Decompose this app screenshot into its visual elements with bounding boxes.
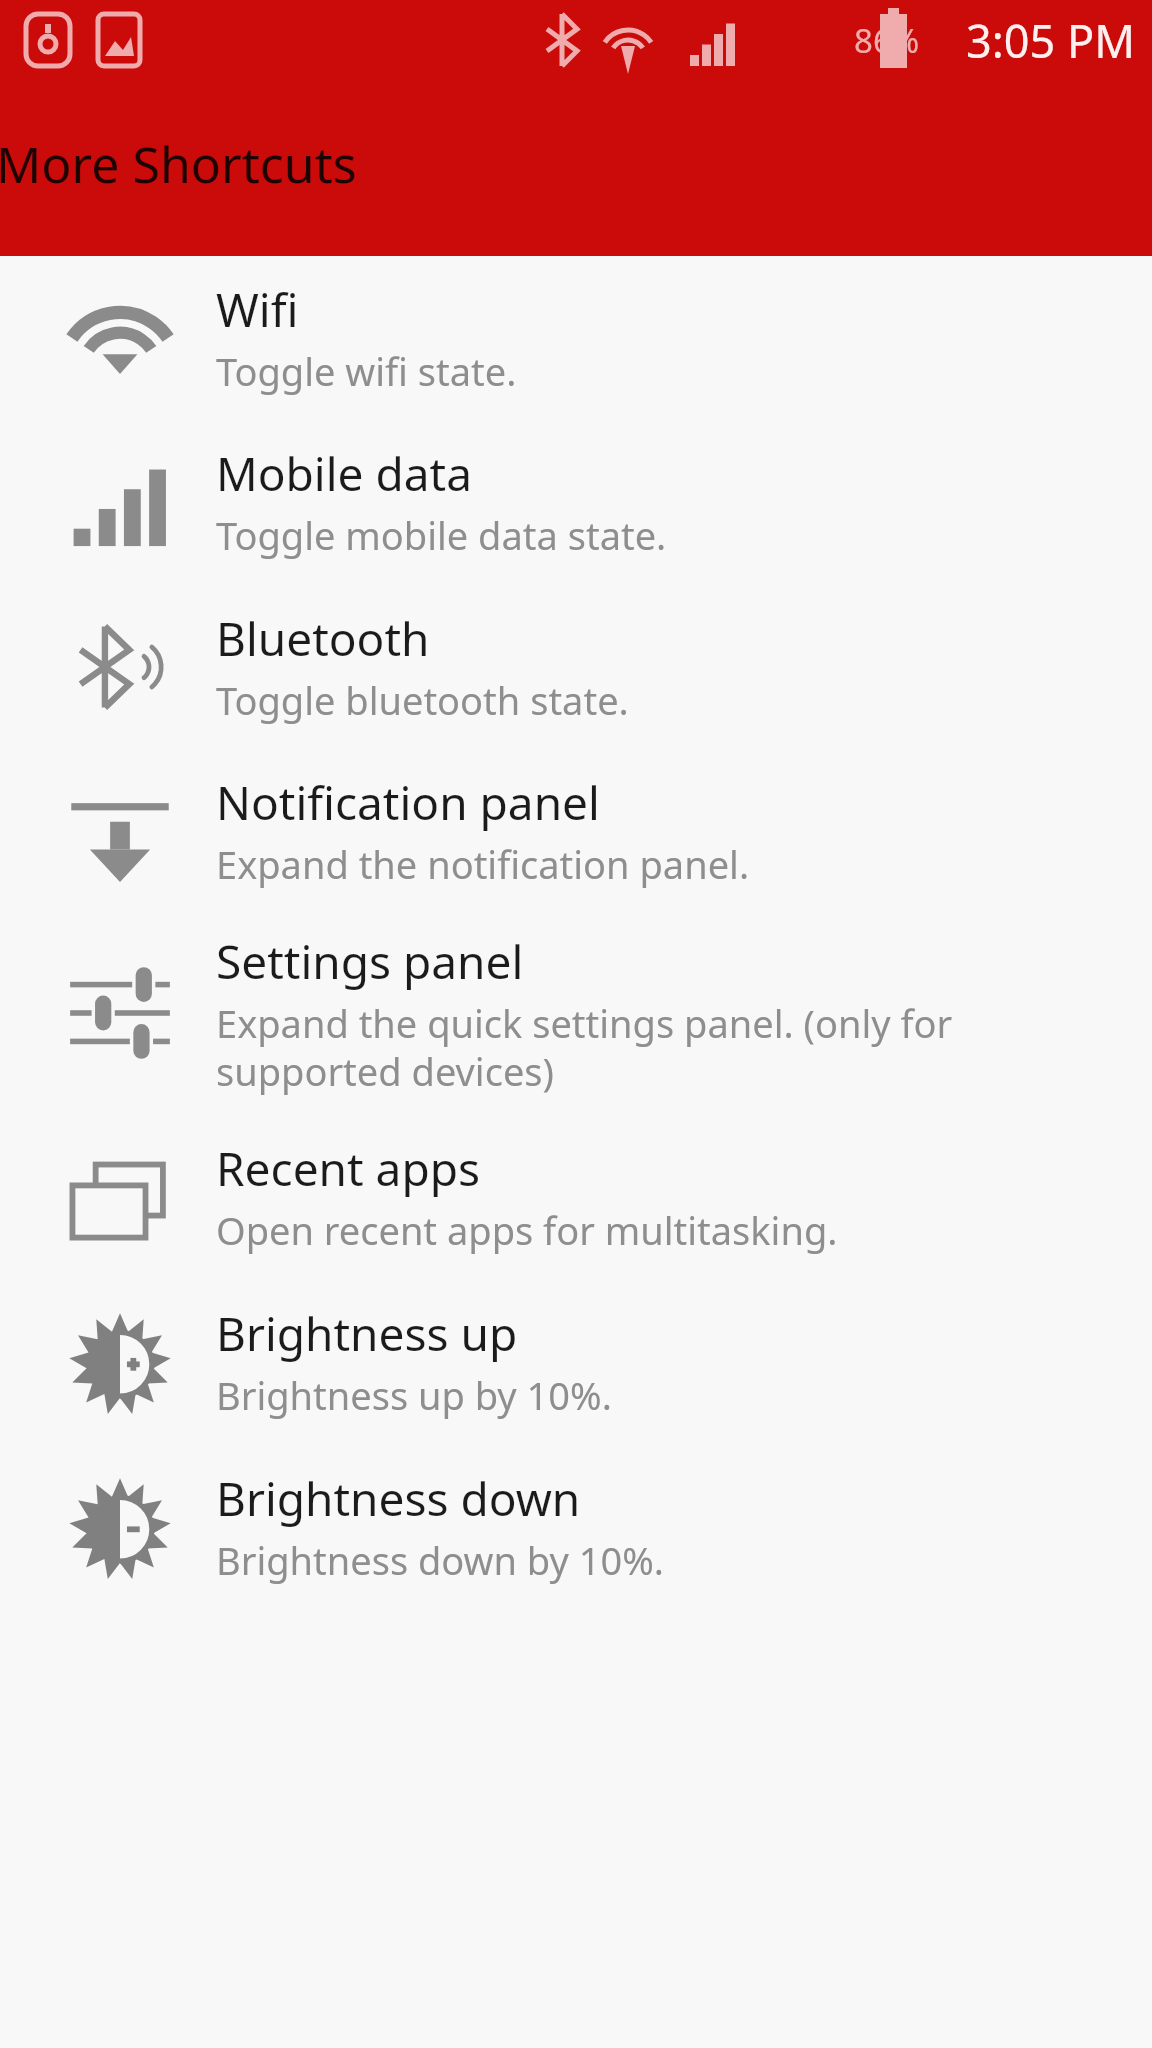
staticText: Mobile data	[216, 442, 472, 505]
staticText: Brightness down	[216, 1467, 581, 1530]
staticText: Expand the notification panel.	[216, 838, 750, 890]
staticText: 86%	[854, 18, 920, 63]
button[interactable]: Wifi	[0, 256, 1152, 419]
staticText: Brightness up	[216, 1302, 518, 1365]
staticText: Expand the quick settings panel. (only f…	[216, 997, 1128, 1097]
staticText: Brightness up by 10%.	[216, 1369, 612, 1421]
button[interactable]: Recent apps	[0, 1114, 1152, 1279]
staticText: More Shortcuts	[0, 130, 357, 198]
staticText: Bluetooth	[216, 607, 430, 670]
button[interactable]: Mobile data	[0, 419, 1152, 584]
staticText: Toggle mobile data state.	[216, 509, 667, 561]
button[interactable]: Settings panel	[0, 912, 1152, 1114]
button[interactable]: Brightness up	[0, 1279, 1152, 1444]
staticText: Toggle bluetooth state.	[216, 674, 629, 726]
staticText: Toggle wifi state.	[216, 345, 517, 397]
button[interactable]: Bluetooth	[0, 584, 1152, 749]
button[interactable]: Brightness down	[0, 1444, 1152, 1609]
staticText: Recent apps	[216, 1137, 480, 1200]
staticText: Open recent apps for multitasking.	[216, 1204, 838, 1256]
staticText: Settings panel	[216, 930, 524, 993]
staticText: Brightness down by 10%.	[216, 1534, 664, 1586]
staticText: Wifi	[216, 278, 299, 341]
button[interactable]: Notification panel	[0, 749, 1152, 912]
staticText: Notification panel	[216, 771, 600, 834]
staticText: 3:05 PM	[966, 10, 1136, 71]
